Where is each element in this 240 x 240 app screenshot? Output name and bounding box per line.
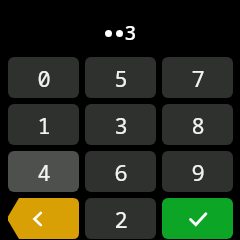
staticText: 4 xyxy=(37,157,51,187)
staticText: 0 xyxy=(37,63,51,93)
staticText: 5 xyxy=(114,63,128,93)
staticText: 3 xyxy=(125,20,136,46)
button[interactable]: 0 xyxy=(8,57,79,98)
button[interactable]: 2 xyxy=(85,198,156,239)
button[interactable]: Confirm xyxy=(162,198,233,239)
staticText: 8 xyxy=(191,110,205,140)
staticText: 3 xyxy=(114,110,128,140)
button[interactable]: 4 xyxy=(8,151,79,192)
staticText: 2 xyxy=(114,204,128,234)
button[interactable]: Delete xyxy=(8,198,79,239)
staticText: 7 xyxy=(191,63,205,93)
button[interactable]: 6 xyxy=(85,151,156,192)
button[interactable]: 7 xyxy=(162,57,233,98)
button[interactable]: 1 xyxy=(8,104,79,145)
button[interactable]: 5 xyxy=(85,57,156,98)
staticText: 9 xyxy=(191,157,205,187)
button[interactable]: 9 xyxy=(162,151,233,192)
staticText: 6 xyxy=(114,157,128,187)
button[interactable]: 8 xyxy=(162,104,233,145)
button[interactable]: 3 xyxy=(85,104,156,145)
staticText: 1 xyxy=(37,110,51,140)
